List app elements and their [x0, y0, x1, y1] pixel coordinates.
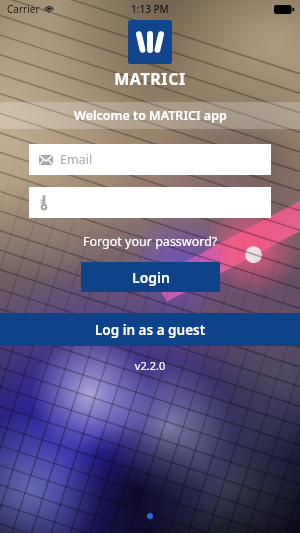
staticText: Forgot your password?: [83, 233, 218, 250]
staticText: 1:13 PM: [131, 2, 169, 16]
button[interactable]: Login: [81, 262, 220, 292]
button[interactable]: Email: [29, 144, 271, 175]
staticText: Log in as a guest: [95, 321, 206, 339]
staticText: MATRICI: [0, 68, 300, 90]
staticText: Welcome to MATRICI app: [74, 107, 227, 124]
button[interactable]: [29, 187, 271, 218]
staticText: v2.2.0: [0, 358, 300, 373]
staticText: Email: [60, 151, 93, 168]
staticText: Carrier: [7, 2, 40, 16]
button[interactable]: Forgot your password?: [0, 233, 300, 250]
button[interactable]: Log in as a guest: [0, 313, 300, 346]
staticText: Login: [132, 268, 170, 287]
